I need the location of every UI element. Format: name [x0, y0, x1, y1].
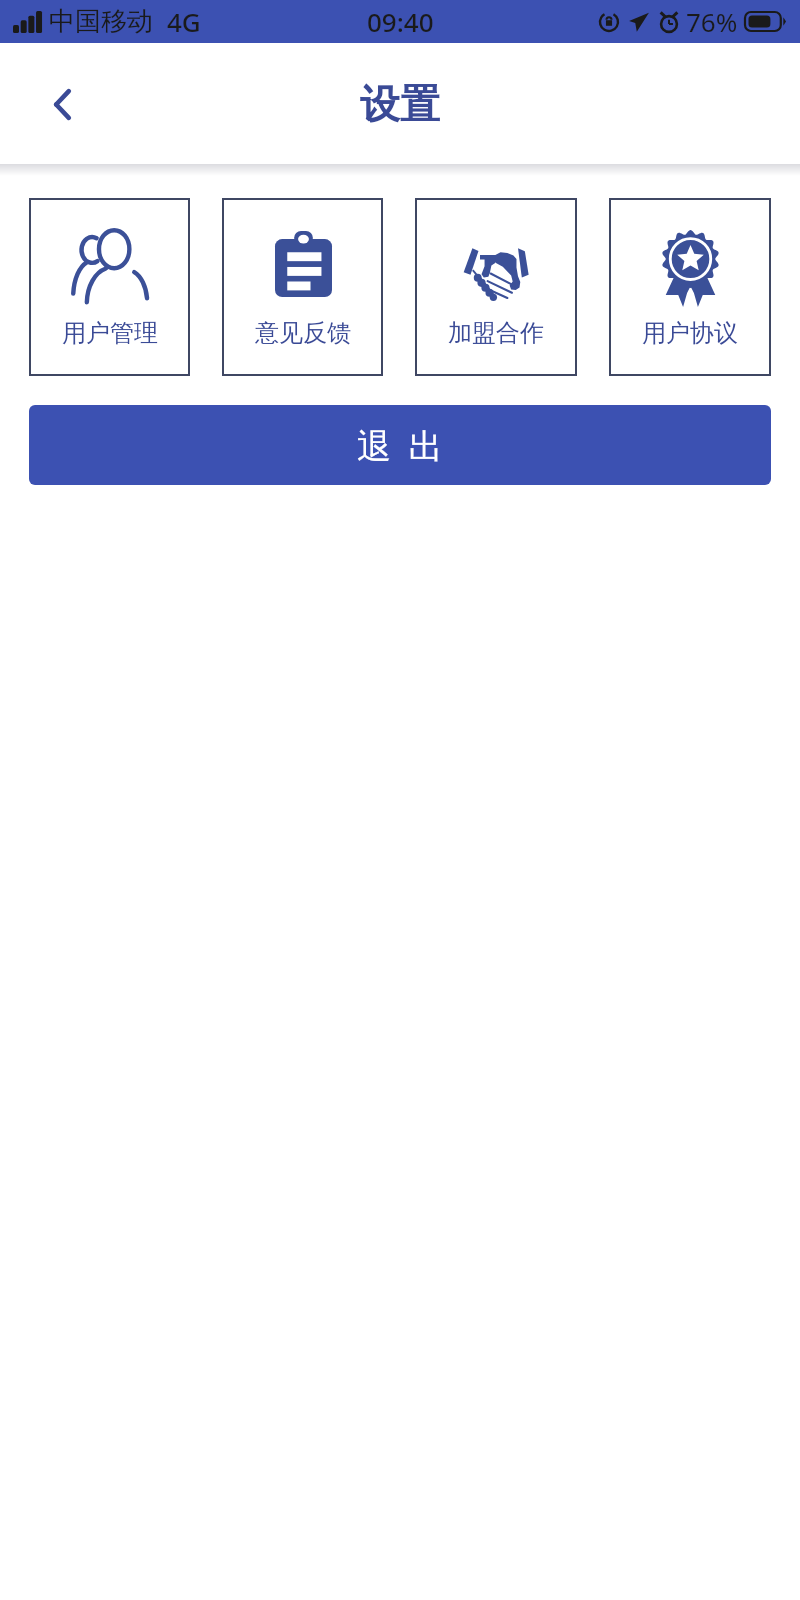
button[interactable]: 退 出	[29, 405, 771, 485]
button[interactable]: 意见反馈	[222, 198, 383, 376]
staticText: 设置	[360, 79, 440, 129]
staticText: 意见反馈	[255, 318, 351, 348]
button[interactable]: 加盟合作	[415, 198, 577, 376]
staticText: 09:40	[367, 4, 434, 39]
button[interactable]: Back	[31, 73, 93, 135]
staticText: 退 出	[357, 422, 443, 468]
button[interactable]: 用户管理	[29, 198, 190, 376]
staticText: 76%	[686, 4, 738, 39]
staticText: 用户管理	[62, 318, 158, 348]
staticText: 用户协议	[642, 318, 738, 348]
staticText: 中国移动	[49, 5, 153, 38]
staticText: 4G	[167, 4, 201, 39]
button[interactable]: 用户协议	[609, 198, 771, 376]
staticText: 加盟合作	[448, 318, 544, 348]
